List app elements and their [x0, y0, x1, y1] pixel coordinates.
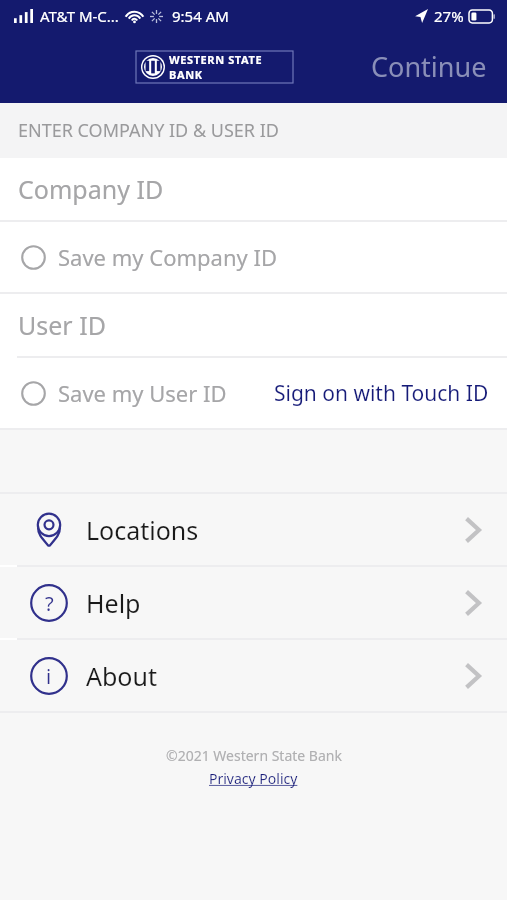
staticText: Sign on with Touch ID	[274, 379, 489, 408]
staticText: User ID	[18, 308, 106, 342]
staticText: AT&T M-C...	[40, 6, 119, 26]
button[interactable]: Locations	[0, 494, 507, 565]
button[interactable]: Continue	[367, 44, 491, 89]
staticText: Save my User ID	[58, 378, 227, 408]
staticText: Help	[86, 586, 141, 620]
button[interactable]: i	[0, 640, 507, 711]
staticText: Save my Company ID	[58, 242, 277, 272]
staticText: Company ID	[18, 172, 164, 206]
button[interactable]: WESTERN STATE BANK	[136, 51, 293, 83]
staticText: 9:54 AM	[172, 6, 229, 26]
button[interactable]: Company ID	[0, 158, 507, 220]
staticText: 27%	[434, 6, 464, 26]
staticText: ENTER COMPANY ID & USER ID	[18, 118, 279, 143]
staticText: ©2021 Western State Bank	[166, 746, 342, 765]
staticText: ?	[45, 590, 54, 617]
staticText: Privacy Policy	[209, 769, 298, 788]
staticText: About	[86, 659, 157, 693]
staticText: Locations	[86, 513, 199, 547]
button[interactable]: ?	[0, 567, 507, 638]
button[interactable]: Sign on with Touch ID	[274, 379, 489, 408]
button[interactable]: Save my User ID	[0, 358, 507, 428]
button[interactable]: User ID	[0, 294, 507, 356]
button[interactable]: Save my Company ID	[0, 222, 507, 292]
staticText: i	[46, 663, 52, 690]
staticText: WESTERN STATE BANK	[169, 52, 293, 82]
staticText: Continue	[371, 48, 487, 85]
button[interactable]: Privacy Policy	[209, 769, 298, 788]
